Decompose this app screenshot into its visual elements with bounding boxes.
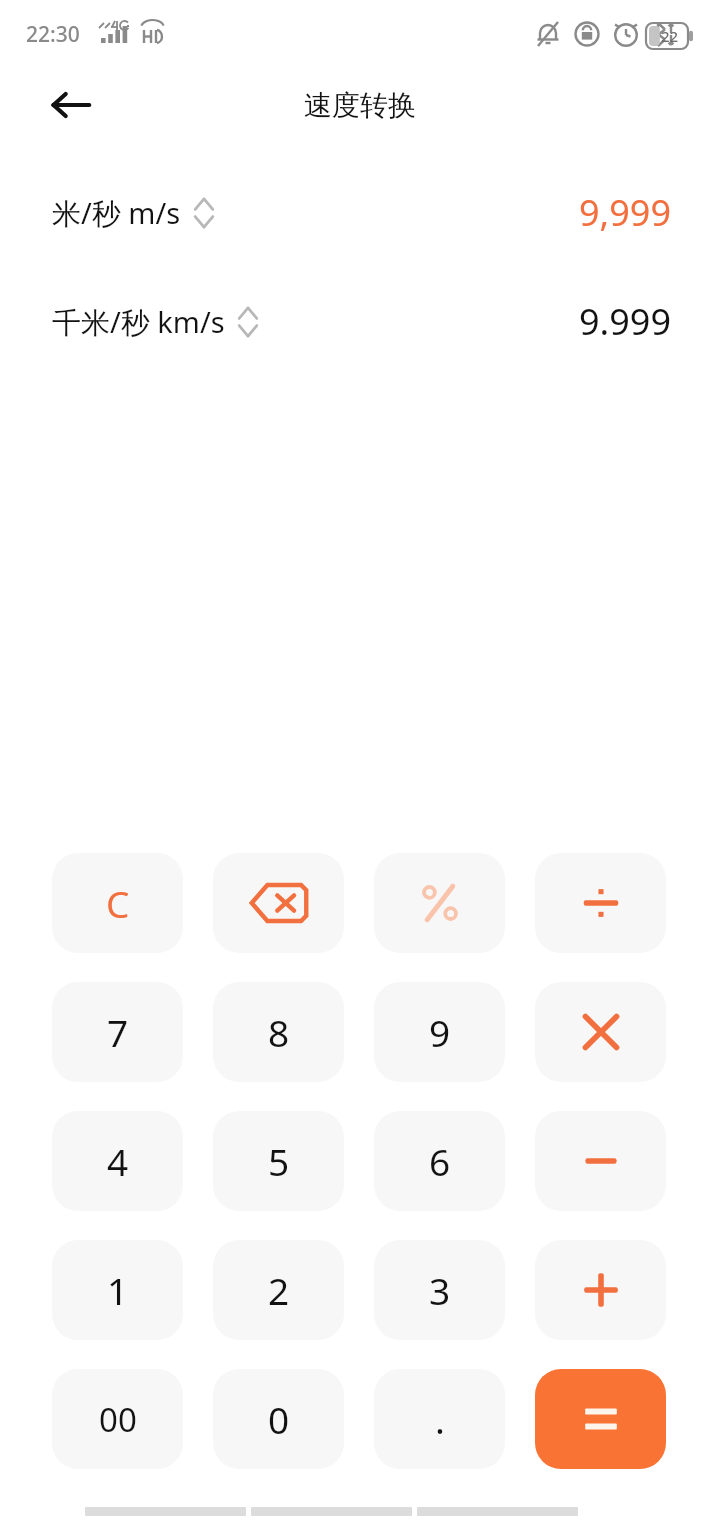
staticText: 米/秒 m/s (52, 193, 181, 233)
button[interactable]: Backspace (213, 853, 344, 953)
staticText: 0 (268, 1394, 290, 1444)
button[interactable]: 6 (374, 1111, 505, 1211)
staticText: 1 (107, 1265, 129, 1315)
button[interactable]: 3 (374, 1240, 505, 1340)
button[interactable]: 9 (374, 982, 505, 1082)
button[interactable]: Back (36, 70, 106, 140)
button[interactable]: 4 (52, 1111, 183, 1211)
button[interactable]: Multiply (535, 982, 666, 1082)
button[interactable]: 5 (213, 1111, 344, 1211)
button[interactable]: 7 (52, 982, 183, 1082)
staticText: . (435, 1394, 445, 1444)
button[interactable]: C (52, 853, 183, 953)
staticText: 5 (268, 1136, 290, 1186)
button[interactable]: 千米/秒 km/s (0, 280, 720, 363)
staticText: 9.999 (579, 297, 672, 346)
staticText: 4 (107, 1136, 129, 1186)
staticText: 2 (268, 1265, 290, 1315)
button[interactable]: 8 (213, 982, 344, 1082)
staticText: 千米/秒 km/s (52, 302, 225, 342)
button[interactable]: Plus (535, 1240, 666, 1340)
button[interactable]: 米/秒 m/s (0, 171, 720, 254)
staticText: 速度转换 (304, 88, 416, 123)
staticText: 3 (429, 1265, 451, 1315)
staticText: 6 (429, 1136, 451, 1186)
staticText: 22 (661, 26, 679, 46)
button[interactable]: 2 (213, 1240, 344, 1340)
button[interactable]: 1 (52, 1240, 183, 1340)
button[interactable]: 00 (52, 1369, 183, 1469)
button[interactable]: Equals (535, 1369, 666, 1469)
button[interactable]: Minus (535, 1111, 666, 1211)
staticText: 9,999 (579, 188, 672, 237)
staticText: C (106, 878, 130, 928)
staticText: 7 (107, 1007, 129, 1057)
staticText: 22:30 (26, 20, 80, 49)
button[interactable]: Percent (374, 853, 505, 953)
button[interactable]: 0 (213, 1369, 344, 1469)
button[interactable]: Divide (535, 853, 666, 953)
staticText: 8 (268, 1007, 290, 1057)
staticText: 00 (99, 1397, 137, 1442)
staticText: 9 (429, 1007, 451, 1057)
button[interactable]: . (374, 1369, 505, 1469)
